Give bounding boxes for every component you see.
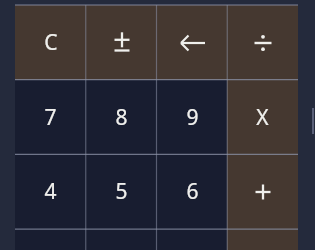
staticText: X [256, 103, 269, 132]
button[interactable]: Four [15, 154, 86, 229]
staticText: 5 [115, 177, 128, 206]
button[interactable]: Eight [86, 80, 157, 155]
button[interactable]: Backspace [157, 5, 228, 80]
staticText: 8 [115, 103, 128, 132]
button[interactable]: Clear [15, 5, 86, 80]
button[interactable]: Plus [227, 154, 298, 229]
button[interactable]: Multiply [227, 80, 298, 155]
button[interactable]: Minus [227, 229, 298, 250]
staticText: 9 [186, 103, 199, 132]
staticText: 4 [44, 177, 57, 206]
button[interactable]: Seven [15, 80, 86, 155]
button[interactable]: Five [86, 154, 157, 229]
button[interactable]: Six [157, 154, 228, 229]
button[interactable]: Plus minus sign [86, 5, 157, 80]
button[interactable]: Two [86, 229, 157, 250]
staticText: C [44, 28, 58, 57]
button[interactable]: Divide [227, 5, 298, 80]
staticText: 7 [44, 103, 57, 132]
staticText: 6 [186, 177, 199, 206]
button[interactable]: One [15, 229, 86, 250]
button[interactable]: Nine [157, 80, 228, 155]
button[interactable]: Three [157, 229, 228, 250]
